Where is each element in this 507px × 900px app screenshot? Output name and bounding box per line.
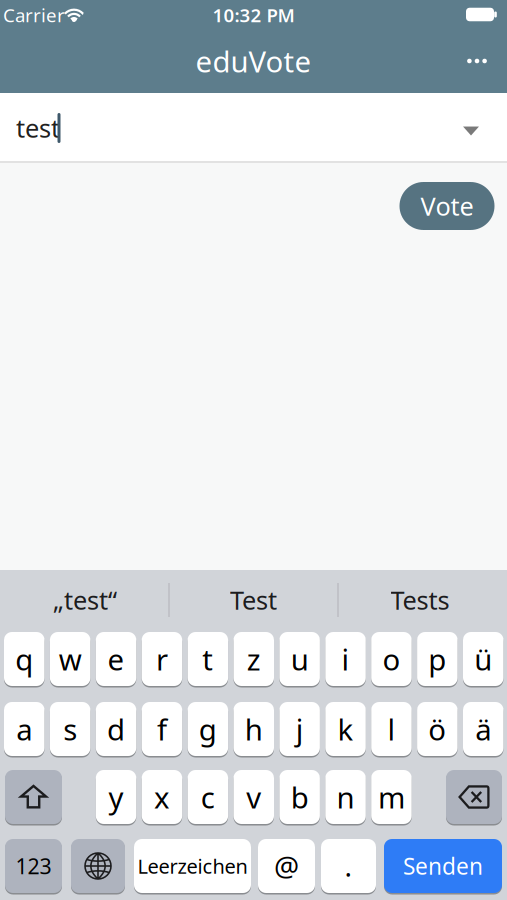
staticText: r: [156, 639, 168, 678]
staticText: Senden: [403, 851, 483, 881]
staticText: 10:32 PM: [212, 3, 294, 27]
button[interactable]: [5, 770, 62, 824]
staticText: e: [107, 639, 124, 678]
staticText: p: [428, 639, 446, 678]
button[interactable]: w: [50, 632, 90, 686]
staticText: a: [16, 709, 32, 748]
button[interactable]: x: [142, 770, 182, 824]
staticText: Leerzeichen: [137, 853, 247, 879]
button[interactable]: Test: [173, 572, 333, 628]
button[interactable]: m: [371, 770, 412, 824]
button[interactable]: ö: [417, 702, 458, 756]
staticText: m: [378, 777, 405, 816]
button[interactable]: a: [4, 702, 44, 756]
button[interactable]: q: [4, 632, 44, 686]
staticText: 123: [15, 852, 51, 880]
button[interactable]: n: [325, 770, 366, 824]
staticText: q: [15, 639, 33, 678]
staticText: g: [199, 709, 217, 748]
staticText: w: [59, 639, 82, 678]
staticText: Vote: [420, 189, 473, 223]
staticText: i: [342, 639, 350, 678]
staticText: x: [154, 777, 170, 816]
button[interactable]: j: [279, 702, 320, 756]
button[interactable]: ä: [463, 702, 503, 756]
button[interactable]: [446, 770, 502, 824]
staticText: s: [63, 709, 77, 748]
staticText: u: [291, 639, 309, 678]
button[interactable]: g: [188, 702, 228, 756]
staticText: ü: [474, 639, 492, 678]
button[interactable]: l: [371, 702, 412, 756]
button[interactable]: test: [0, 93, 507, 161]
button[interactable]: [71, 839, 125, 893]
staticText: f: [157, 709, 167, 748]
staticText: Tests: [390, 583, 449, 617]
button[interactable]: z: [233, 632, 274, 686]
button[interactable]: Vote: [399, 182, 494, 230]
button[interactable]: o: [371, 632, 412, 686]
staticText: „test“: [53, 583, 117, 617]
button[interactable]: d: [96, 702, 136, 756]
staticText: eduVote: [195, 41, 311, 80]
staticText: y: [108, 777, 123, 816]
staticText: @: [274, 847, 299, 885]
button[interactable]: Senden: [384, 839, 502, 893]
button[interactable]: v: [233, 770, 274, 824]
button[interactable]: y: [96, 770, 136, 824]
button[interactable]: f: [142, 702, 182, 756]
staticText: b: [291, 777, 309, 816]
staticText: h: [245, 709, 263, 748]
button[interactable]: u: [279, 632, 320, 686]
button[interactable]: c: [188, 770, 228, 824]
staticText: z: [247, 639, 261, 678]
button[interactable]: Leerzeichen: [134, 839, 251, 893]
button[interactable]: k: [325, 702, 366, 756]
button[interactable]: s: [50, 702, 90, 756]
button[interactable]: r: [142, 632, 182, 686]
staticText: n: [337, 777, 355, 816]
staticText: .: [344, 847, 352, 885]
button[interactable]: [455, 41, 499, 81]
button[interactable]: ü: [463, 632, 503, 686]
staticText: Carrier: [3, 3, 65, 27]
staticText: v: [246, 777, 261, 816]
staticText: t: [202, 639, 213, 678]
button[interactable]: p: [417, 632, 458, 686]
staticText: k: [338, 709, 354, 748]
staticText: test: [16, 111, 60, 145]
staticText: j: [296, 709, 304, 748]
button[interactable]: @: [258, 839, 315, 893]
button[interactable]: „test“: [5, 572, 165, 628]
button[interactable]: b: [279, 770, 320, 824]
button[interactable]: 123: [5, 839, 62, 893]
button[interactable]: .: [321, 839, 376, 893]
button[interactable]: t: [188, 632, 228, 686]
button[interactable]: Tests: [340, 572, 500, 628]
button[interactable]: i: [325, 632, 366, 686]
button[interactable]: h: [233, 702, 274, 756]
staticText: Test: [230, 583, 277, 617]
staticText: d: [107, 709, 125, 748]
button[interactable]: e: [96, 632, 136, 686]
staticText: o: [382, 639, 400, 678]
staticText: ä: [475, 709, 491, 748]
staticText: ö: [428, 709, 446, 748]
staticText: c: [201, 777, 215, 816]
staticText: l: [387, 709, 395, 748]
